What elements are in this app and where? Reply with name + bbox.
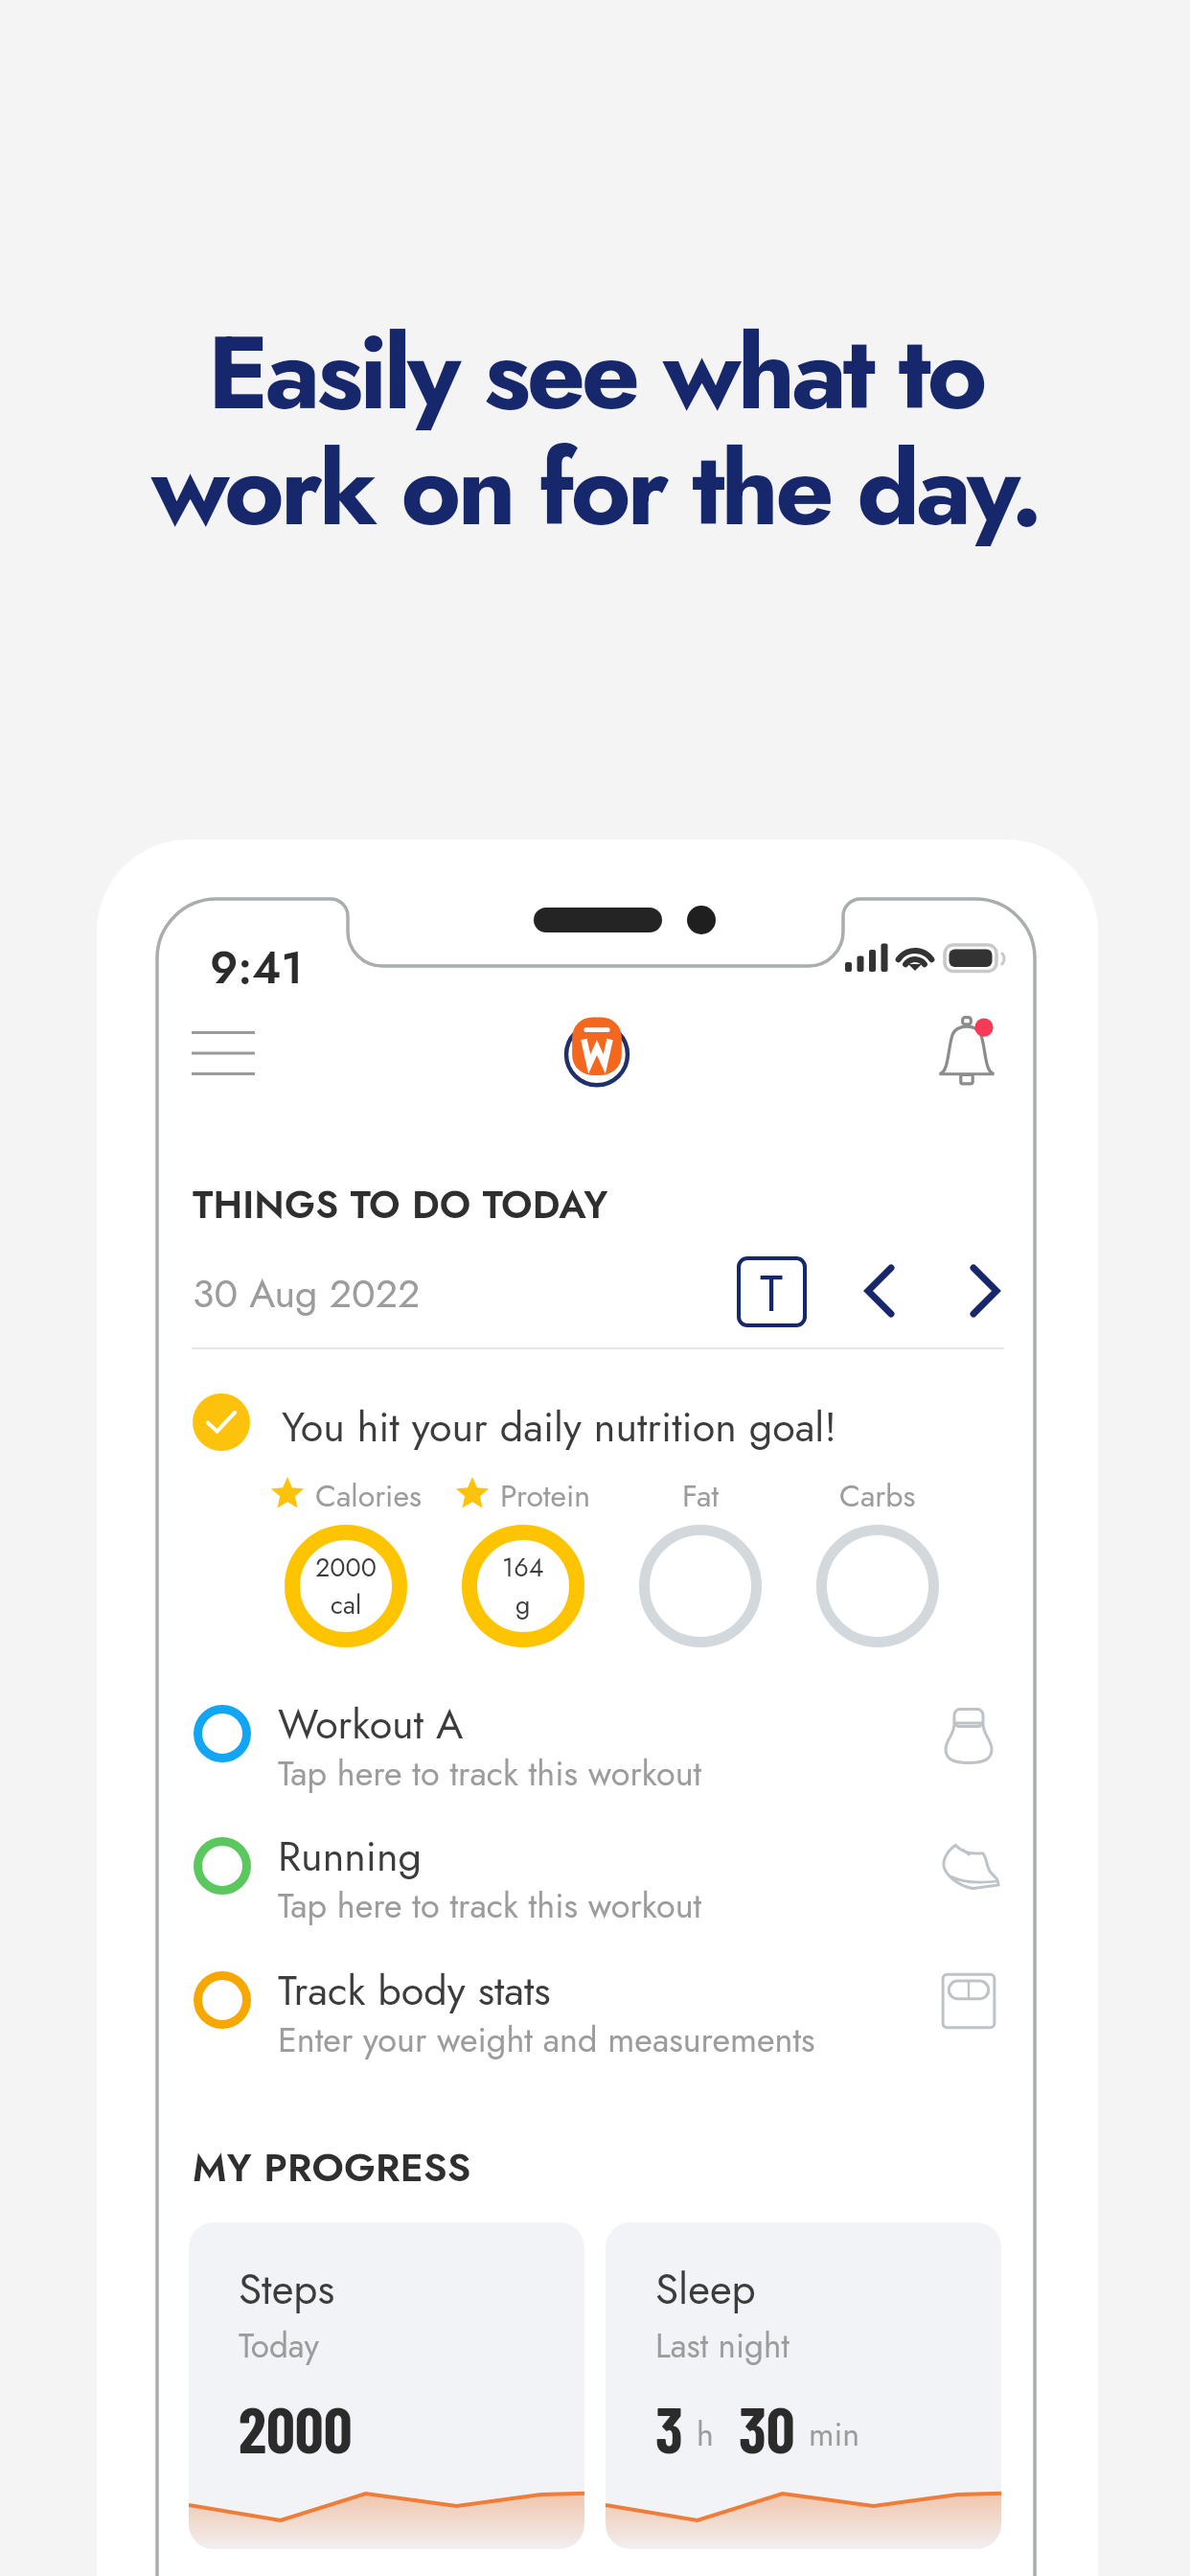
staticText: min [809, 2411, 860, 2458]
staticText: Workout A [278, 1694, 464, 1754]
staticText: 2000 [315, 1549, 377, 1586]
button[interactable]: Previous day [851, 1257, 908, 1324]
button[interactable]: Open navigation menu [176, 1013, 270, 1090]
staticText: Easily see what to work on for the day. [151, 299, 1040, 563]
staticText: Track body stats [278, 1961, 551, 2020]
staticText: 30 Aug 2022 [193, 1265, 421, 1322]
staticText: Today [239, 2322, 319, 2371]
staticText: 30 [739, 2390, 795, 2466]
button[interactable]: App home [561, 1011, 632, 1090]
staticText: Calories [315, 1474, 422, 1514]
staticText: g [515, 1586, 531, 1623]
staticText: h [697, 2411, 714, 2458]
button[interactable]: Go to today [739, 1258, 805, 1325]
button[interactable]: Track body stats [182, 1935, 1019, 2065]
staticText: Tap here to track this workout [278, 1880, 702, 1930]
staticText: Enter your weight and measurements [278, 2014, 815, 2064]
button[interactable]: Running [182, 1801, 1019, 1931]
staticText: cal [331, 1586, 362, 1623]
button[interactable]: Workout A [182, 1668, 1019, 1799]
button[interactable]: Steps [189, 2222, 584, 2549]
staticText: You hit your daily nutrition goal! [282, 1397, 837, 1457]
staticText: Sleep [655, 2259, 756, 2320]
staticText: T [760, 1257, 784, 1324]
staticText: Protein [500, 1474, 591, 1514]
staticText: Running [278, 1827, 423, 1886]
staticText: Steps [239, 2259, 335, 2320]
staticText: 164 [502, 1549, 544, 1586]
staticText: Carbs [839, 1474, 916, 1514]
staticText: THINGS TO DO TODAY [193, 1177, 608, 1232]
staticText: Tap here to track this workout [278, 1748, 702, 1798]
staticText: Fat [682, 1474, 720, 1514]
staticText: 9:41 [210, 936, 303, 1000]
staticText: Last night [655, 2322, 790, 2371]
button[interactable]: Next day [956, 1257, 1014, 1324]
button[interactable]: Sleep [606, 2222, 1001, 2549]
staticText: 3 [655, 2390, 683, 2466]
staticText: 2000 [239, 2390, 353, 2466]
staticText: MY PROGRESS [193, 2139, 471, 2196]
button[interactable]: Notifications [922, 1006, 1012, 1096]
